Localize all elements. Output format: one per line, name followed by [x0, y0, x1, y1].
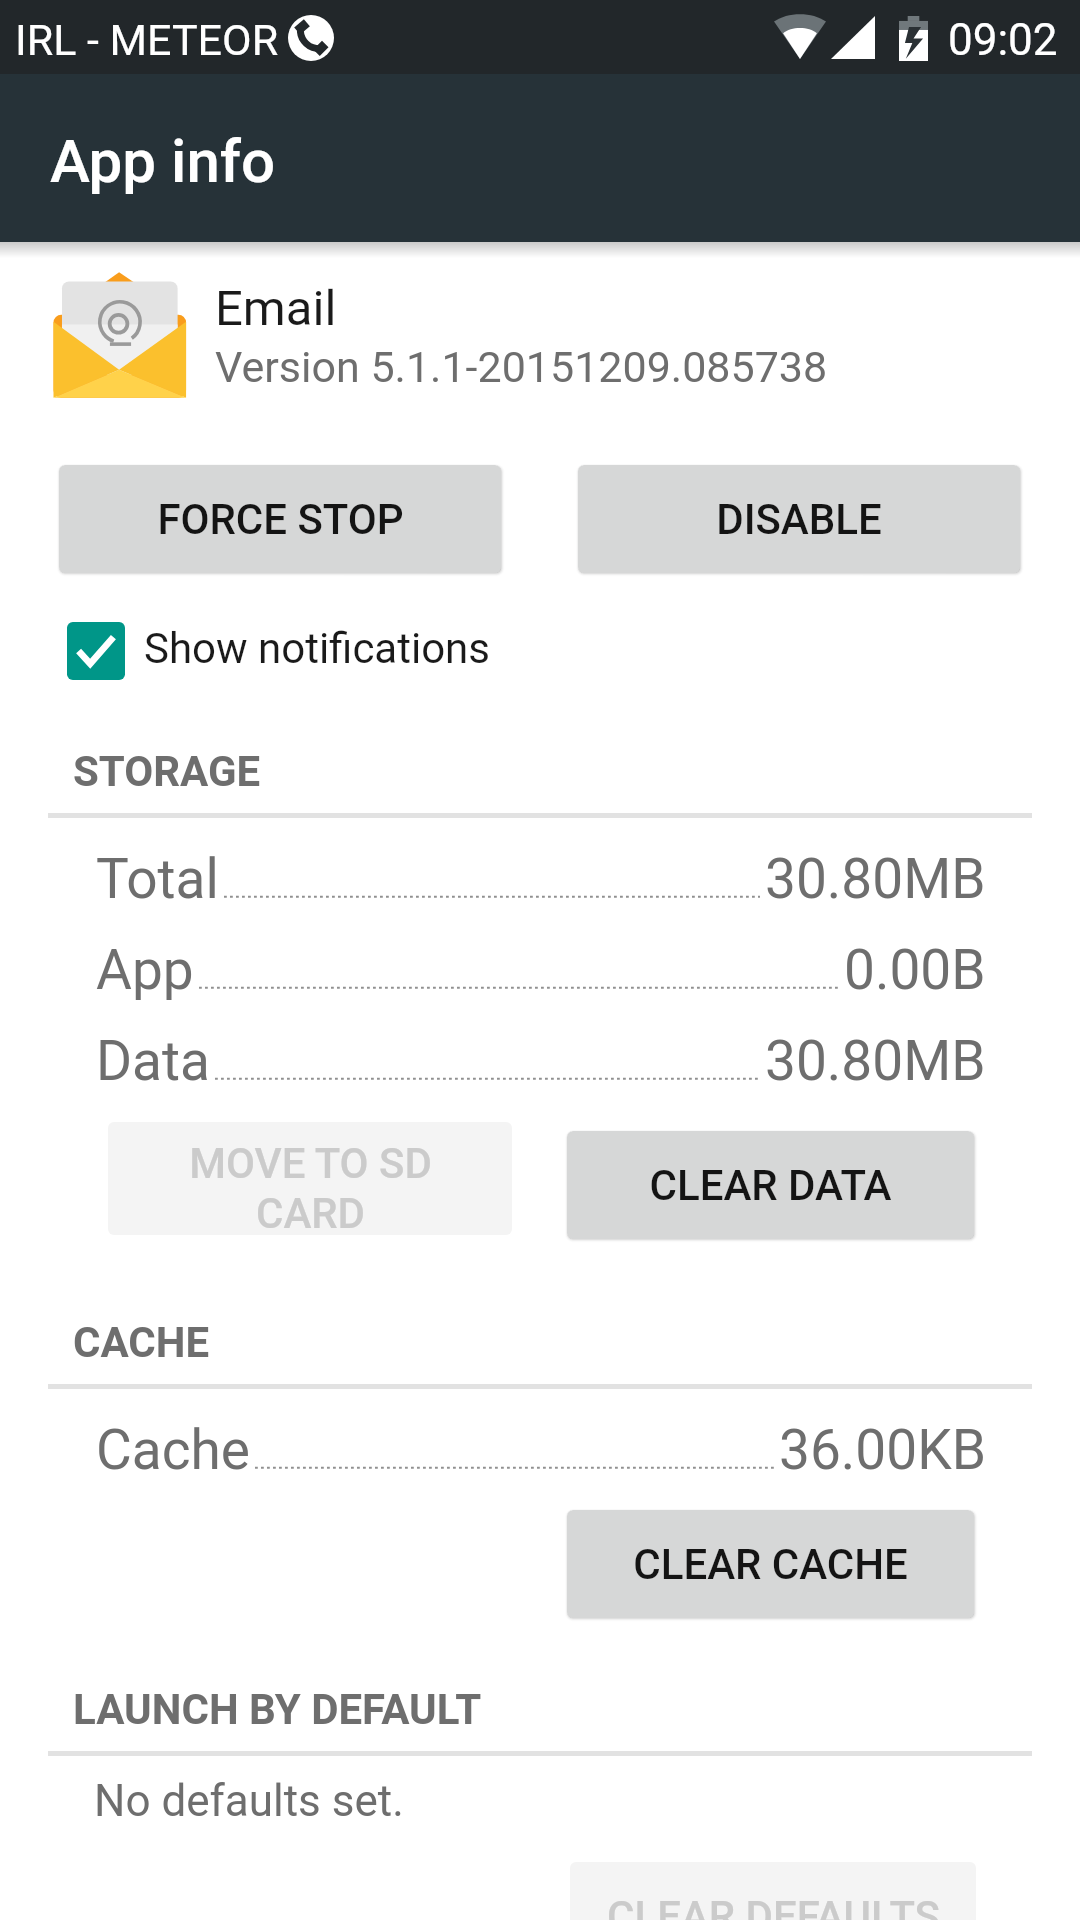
staticText: CACHE [73, 1318, 210, 1367]
staticText: MOVE TO SD CARD [189, 1139, 432, 1235]
button[interactable]: CLEAR DATA [567, 1131, 974, 1239]
staticText: 30.80MB [765, 847, 986, 911]
button[interactable]: MOVE TO SD CARD [108, 1122, 512, 1235]
button[interactable]: Show notifications [58, 609, 490, 693]
staticText: CLEAR DATA [649, 1161, 892, 1210]
button[interactable]: DISABLE [578, 465, 1020, 573]
staticText: 0.00B [844, 938, 986, 1002]
button[interactable]: CLEAR CACHE [567, 1510, 974, 1618]
staticText: IRL - METEOR [15, 15, 279, 65]
staticText: 36.00KB [779, 1418, 986, 1482]
staticText: Data [96, 1029, 210, 1093]
button[interactable]: CLEAR DEFAULTS [570, 1862, 976, 1920]
staticText: CLEAR CACHE [633, 1540, 908, 1589]
staticText: STORAGE [73, 747, 261, 796]
staticText: 09:02 [948, 14, 1058, 66]
staticText: Email [215, 280, 337, 337]
staticText: Cache [96, 1418, 250, 1482]
staticText: Version 5.1.1-20151209.085738 [215, 342, 828, 392]
staticText: DISABLE [716, 495, 882, 544]
button[interactable]: Show notifications [66, 621, 126, 681]
staticText: 30.80MB [765, 1029, 986, 1093]
staticText: CLEAR DEFAULTS [607, 1892, 940, 1920]
staticText: Total [96, 847, 219, 911]
button[interactable]: FORCE STOP [59, 465, 501, 573]
staticText: App info [50, 126, 276, 196]
staticText: LAUNCH BY DEFAULT [73, 1685, 482, 1734]
staticText: FORCE STOP [157, 495, 404, 544]
staticText: Show notifications [144, 624, 490, 673]
staticText: No defaults set. [94, 1775, 404, 1827]
staticText: App [96, 938, 194, 1002]
other: Call [288, 15, 334, 61]
